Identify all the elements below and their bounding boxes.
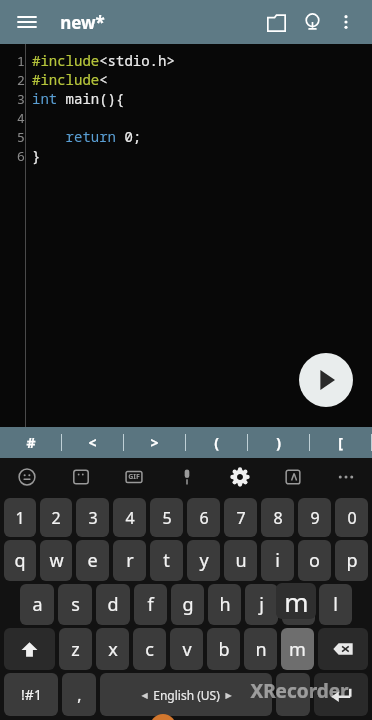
staticText: #	[26, 433, 36, 452]
button[interactable]: o	[298, 540, 331, 581]
staticText: v	[182, 637, 192, 662]
button[interactable]: 5	[150, 498, 183, 537]
staticText: e	[87, 548, 98, 573]
staticText: (	[214, 433, 219, 452]
staticText: 5	[162, 507, 172, 529]
button[interactable]: Shift	[4, 628, 55, 670]
staticText: ,	[77, 684, 82, 706]
button[interactable]: 3	[76, 498, 109, 537]
button[interactable]: f	[134, 584, 167, 625]
button[interactable]: s	[58, 584, 92, 625]
button[interactable]: !#1	[4, 673, 58, 716]
button[interactable]: v	[170, 628, 203, 670]
staticText: 1	[17, 52, 25, 70]
staticText: )	[276, 433, 281, 452]
button[interactable]	[276, 673, 310, 716]
button[interactable]: z	[59, 628, 92, 670]
button[interactable]: 8	[261, 498, 294, 537]
button[interactable]: 1	[4, 498, 36, 537]
staticText: q	[14, 548, 26, 573]
staticText: return 0;	[32, 127, 142, 146]
button[interactable]: g	[171, 584, 204, 625]
button[interactable]: [	[310, 427, 371, 458]
staticText: h	[219, 592, 231, 617]
button[interactable]: q	[4, 540, 36, 581]
button[interactable]: t	[150, 540, 183, 581]
button[interactable]: 0	[335, 498, 368, 537]
staticText: new*	[60, 11, 105, 34]
button[interactable]: b	[207, 628, 240, 670]
button[interactable]: n	[244, 628, 277, 670]
button[interactable]: a	[20, 584, 54, 625]
staticText: [	[338, 433, 343, 452]
staticText: s	[71, 592, 80, 617]
button[interactable]: r	[113, 540, 146, 581]
button[interactable]: 7	[224, 498, 257, 537]
button[interactable]: (	[186, 427, 247, 458]
staticText: XRecorder	[250, 678, 349, 704]
staticText: d	[107, 592, 119, 617]
button[interactable]: Voice input	[160, 458, 213, 495]
staticText: 8	[273, 507, 283, 529]
button[interactable]: j	[245, 584, 278, 625]
button[interactable]: p	[335, 540, 368, 581]
staticText: int main(){	[32, 89, 125, 108]
button[interactable]: More options	[330, 6, 362, 38]
staticText: g	[182, 592, 194, 617]
button[interactable]: <	[62, 427, 123, 458]
staticText: English (US)	[153, 687, 220, 703]
button[interactable]: e	[76, 540, 109, 581]
button[interactable]: u	[224, 540, 257, 581]
button[interactable]: m	[281, 628, 314, 670]
button[interactable]: 4	[113, 498, 146, 537]
button[interactable]: w	[40, 540, 72, 581]
button[interactable]: More	[319, 458, 372, 495]
staticText: 1	[15, 507, 25, 529]
staticText: z	[71, 637, 80, 662]
button[interactable]: Enter	[314, 673, 368, 716]
button[interactable]: h	[208, 584, 241, 625]
staticText: w	[49, 548, 64, 573]
button[interactable]: x	[96, 628, 129, 670]
staticText: 6	[199, 507, 209, 529]
staticText: 0	[347, 507, 357, 529]
staticText: r	[126, 548, 134, 573]
staticText: 4	[125, 507, 135, 529]
button[interactable]: 6	[187, 498, 220, 537]
staticText: a	[32, 592, 43, 617]
staticText: p	[346, 548, 358, 573]
staticText: b	[218, 637, 230, 662]
button[interactable]: GIF	[107, 458, 160, 495]
button[interactable]: )	[248, 427, 309, 458]
button[interactable]: Settings	[213, 458, 266, 495]
button[interactable]: k	[282, 584, 315, 625]
button[interactable]: Run	[299, 353, 353, 407]
button[interactable]: Menu	[10, 5, 44, 39]
button[interactable]: 9	[298, 498, 331, 537]
staticText: c	[145, 637, 154, 662]
button[interactable]: Hint	[294, 4, 330, 40]
staticText: x	[108, 637, 118, 662]
button[interactable]: ,	[62, 673, 96, 716]
button[interactable]: l	[319, 584, 352, 625]
staticText: 5	[17, 128, 25, 146]
button[interactable]: i	[261, 540, 294, 581]
button[interactable]: Open folder	[258, 4, 294, 40]
button[interactable]: c	[133, 628, 166, 670]
button[interactable]: d	[96, 584, 130, 625]
staticText: ▶	[225, 691, 232, 700]
button[interactable]: Stickers	[54, 458, 107, 495]
staticText: 7	[236, 507, 246, 529]
button[interactable]: Translate	[266, 458, 319, 495]
button[interactable]: y	[187, 540, 220, 581]
staticText: 2	[17, 71, 25, 89]
button[interactable]: 2	[40, 498, 72, 537]
button[interactable]: >	[124, 427, 185, 458]
staticText: k	[294, 592, 304, 617]
button[interactable]: ◀	[100, 673, 272, 716]
button[interactable]: Emoji	[0, 458, 54, 495]
button[interactable]: Backspace	[318, 628, 368, 670]
staticText: }	[32, 146, 41, 165]
staticText: GIF	[128, 472, 140, 482]
button[interactable]: #	[0, 427, 61, 458]
